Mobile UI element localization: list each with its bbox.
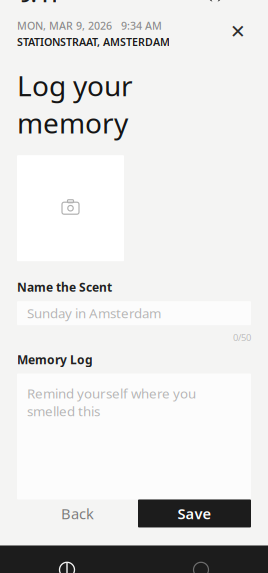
staticText: Log your memory bbox=[17, 67, 133, 141]
staticText: 0/50 bbox=[233, 331, 251, 344]
button[interactable]: SENSING bbox=[0, 562, 134, 573]
button[interactable]: Add photo bbox=[17, 155, 124, 261]
button[interactable]: Remind yourself where you smelled this bbox=[17, 373, 251, 499]
staticText: Memory Log bbox=[17, 351, 93, 367]
staticText: Save bbox=[177, 504, 211, 523]
staticText: MON, MAR 9, 2026 9:34 AM bbox=[17, 18, 162, 33]
button[interactable]: Sunday in Amsterdam bbox=[17, 301, 251, 325]
button[interactable]: Back bbox=[46, 499, 108, 527]
staticText: STATIONSTRAAT, AMSTERDAM bbox=[17, 35, 170, 49]
button[interactable]: MY SCENTS bbox=[134, 562, 268, 573]
staticText: Name the Scent bbox=[17, 279, 112, 295]
button[interactable]: Close bbox=[225, 18, 251, 44]
staticText: Back bbox=[61, 504, 94, 523]
button[interactable]: Save bbox=[138, 499, 251, 527]
staticText: Remind yourself where you smelled this bbox=[27, 384, 196, 420]
staticText: Sunday in Amsterdam bbox=[27, 304, 161, 322]
staticText: 9:41 bbox=[20, 0, 59, 8]
staticText: ✕ bbox=[230, 21, 246, 42]
